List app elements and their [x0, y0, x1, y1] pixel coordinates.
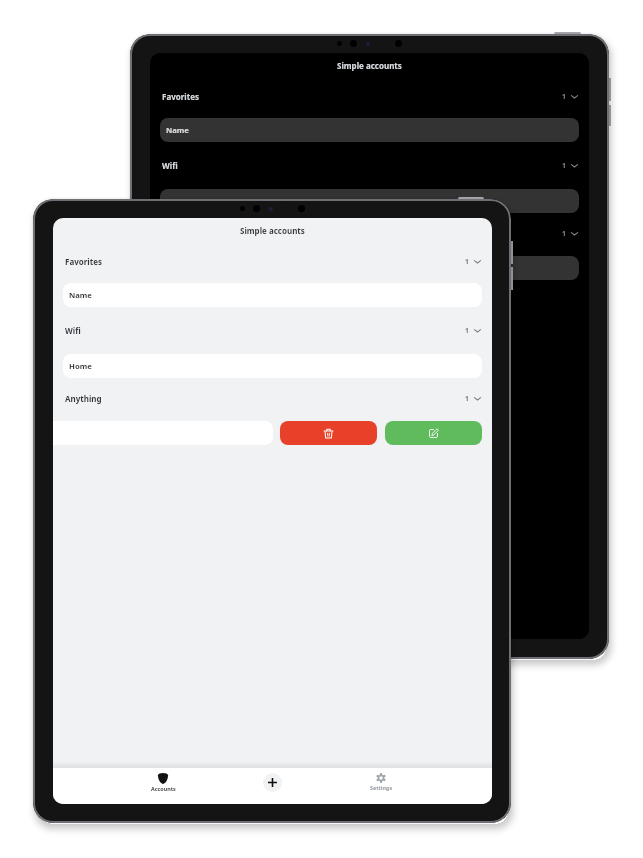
button[interactable]: Settings: [443, 603, 513, 639]
button[interactable]: Wifi: [150, 153, 589, 177]
staticText: 1: [465, 326, 469, 335]
button[interactable]: Name: [160, 118, 579, 142]
staticText: Wifi: [65, 325, 81, 336]
staticText: Name: [69, 290, 92, 300]
button[interactable]: Home: [63, 354, 482, 378]
staticText: 1: [465, 394, 469, 403]
staticText: 1: [465, 257, 469, 266]
button[interactable]: Anything: [53, 386, 492, 410]
staticText: 1: [562, 92, 566, 101]
staticText: Simple accounts: [337, 60, 402, 71]
staticText: Simple accounts: [240, 225, 305, 236]
staticText: Favorites: [162, 91, 199, 102]
button[interactable]: Wifi: [53, 318, 492, 342]
staticText: 1: [562, 229, 566, 238]
button[interactable]: Favorites: [150, 84, 589, 108]
button[interactable]: Edit: [385, 421, 482, 445]
button[interactable]: Anything: [150, 221, 589, 245]
staticText: 1: [562, 161, 566, 170]
button[interactable]: [160, 256, 579, 280]
staticText: Favorites: [65, 256, 102, 267]
staticText: Accounts: [151, 785, 176, 792]
staticText: Anything: [65, 393, 102, 404]
button[interactable]: Favorites: [53, 249, 492, 273]
button[interactable]: Name: [63, 283, 482, 307]
staticText: Name: [166, 125, 189, 135]
staticText: Settings: [370, 784, 393, 791]
staticText: Home: [69, 361, 92, 371]
button[interactable]: Home: [160, 189, 579, 213]
staticText: Wifi: [162, 160, 178, 171]
button[interactable]: Add account: [263, 773, 282, 792]
button[interactable]: Settings: [346, 768, 416, 804]
staticText: Home: [166, 196, 189, 206]
button[interactable]: Accounts: [128, 768, 198, 804]
button[interactable]: Delete: [280, 421, 377, 445]
